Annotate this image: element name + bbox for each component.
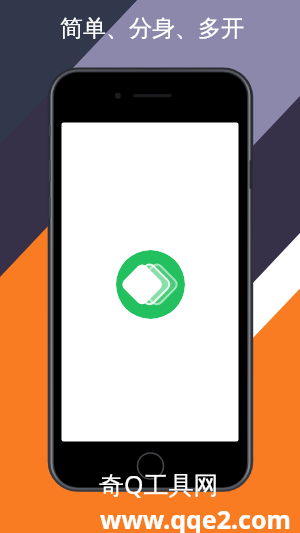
button[interactable]: www.qqe2.com — [98, 500, 289, 533]
staticText: 奇Q工具网 — [99, 467, 219, 501]
staticText: www.qqe2.com — [100, 502, 291, 533]
staticText: 简单、分身、多开 — [60, 14, 244, 43]
button[interactable]: Open app — [116, 250, 185, 319]
button[interactable]: 奇Q工具网 — [97, 465, 217, 499]
